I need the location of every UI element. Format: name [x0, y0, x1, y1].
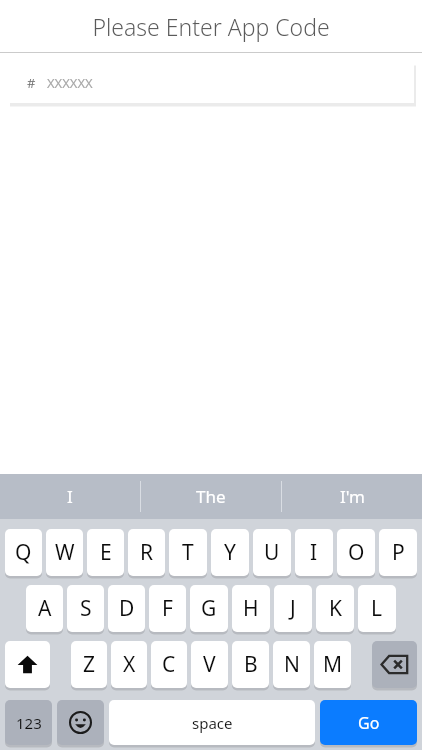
- staticText: Go: [358, 712, 380, 734]
- button[interactable]: Shift: [5, 641, 50, 688]
- staticText: XXXXXX: [47, 74, 93, 92]
- staticText: L: [371, 594, 383, 623]
- button[interactable]: D: [108, 585, 145, 632]
- staticText: W: [55, 538, 75, 567]
- button[interactable]: E: [87, 529, 124, 576]
- staticText: V: [203, 650, 216, 679]
- staticText: F: [162, 594, 173, 623]
- staticText: S: [80, 594, 92, 623]
- staticText: O: [348, 538, 365, 567]
- button[interactable]: G: [190, 585, 228, 632]
- button[interactable]: #: [8, 62, 414, 103]
- staticText: #: [27, 74, 36, 92]
- button[interactable]: F: [149, 585, 186, 632]
- button[interactable]: I'm: [282, 474, 422, 519]
- button[interactable]: B: [232, 641, 269, 688]
- button[interactable]: J: [274, 585, 312, 632]
- staticText: R: [140, 538, 154, 567]
- staticText: J: [290, 594, 296, 623]
- staticText: E: [100, 538, 112, 567]
- button[interactable]: The: [141, 474, 281, 519]
- staticText: U: [264, 538, 280, 567]
- staticText: I: [67, 485, 73, 508]
- button[interactable]: C: [151, 641, 187, 688]
- staticText: N: [284, 650, 300, 679]
- button[interactable]: O: [337, 529, 375, 576]
- button[interactable]: H: [232, 585, 270, 632]
- staticText: X: [123, 650, 136, 679]
- button[interactable]: Y: [211, 529, 249, 576]
- button[interactable]: K: [316, 585, 354, 632]
- staticText: I'm: [340, 485, 365, 508]
- button[interactable]: M: [314, 641, 351, 688]
- staticText: Please Enter App Code: [92, 11, 330, 42]
- button[interactable]: space: [109, 700, 315, 745]
- staticText: D: [119, 594, 135, 623]
- button[interactable]: U: [253, 529, 291, 576]
- staticText: H: [243, 594, 259, 623]
- staticText: I: [310, 538, 318, 567]
- button[interactable]: R: [128, 529, 165, 576]
- button[interactable]: Z: [71, 641, 107, 688]
- staticText: T: [182, 538, 194, 567]
- staticText: The: [196, 485, 226, 508]
- staticText: Z: [83, 650, 96, 679]
- button[interactable]: I: [0, 474, 140, 519]
- button[interactable]: Go: [320, 700, 417, 745]
- button[interactable]: W: [46, 529, 83, 576]
- staticText: P: [392, 538, 405, 567]
- staticText: A: [38, 594, 52, 623]
- staticText: 123: [16, 713, 42, 733]
- staticText: Y: [224, 538, 236, 567]
- staticText: space: [192, 713, 233, 733]
- button[interactable]: S: [67, 585, 104, 632]
- button[interactable]: Q: [5, 529, 42, 576]
- staticText: C: [162, 650, 176, 679]
- staticText: G: [201, 594, 217, 623]
- button[interactable]: P: [379, 529, 417, 576]
- button[interactable]: V: [191, 641, 228, 688]
- staticText: K: [329, 594, 342, 623]
- button[interactable]: 123: [5, 700, 52, 745]
- staticText: B: [244, 650, 258, 679]
- button[interactable]: X: [111, 641, 147, 688]
- button[interactable]: I: [295, 529, 333, 576]
- button[interactable]: T: [169, 529, 207, 576]
- staticText: M: [323, 650, 343, 679]
- button[interactable]: Backspace: [372, 641, 417, 688]
- button[interactable]: L: [358, 585, 396, 632]
- button[interactable]: N: [273, 641, 310, 688]
- button[interactable]: A: [26, 585, 63, 632]
- staticText: Q: [15, 538, 32, 567]
- button[interactable]: Emoji: [57, 700, 104, 745]
